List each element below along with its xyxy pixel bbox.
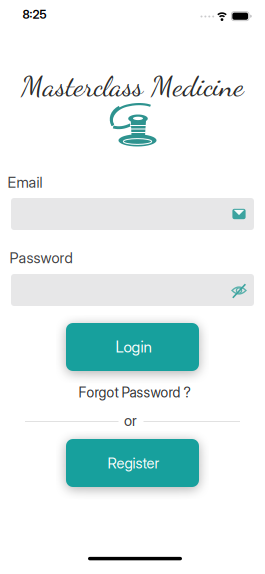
staticText: Masterclass Medicine xyxy=(21,68,244,104)
staticText: Forgot Password ? xyxy=(78,384,190,401)
staticText: Register xyxy=(107,454,159,472)
staticText: Password xyxy=(9,249,72,267)
staticText: Login xyxy=(115,338,151,356)
staticText: Email xyxy=(7,174,42,191)
staticText: or xyxy=(124,412,137,429)
staticText: 8:25 xyxy=(22,7,46,22)
